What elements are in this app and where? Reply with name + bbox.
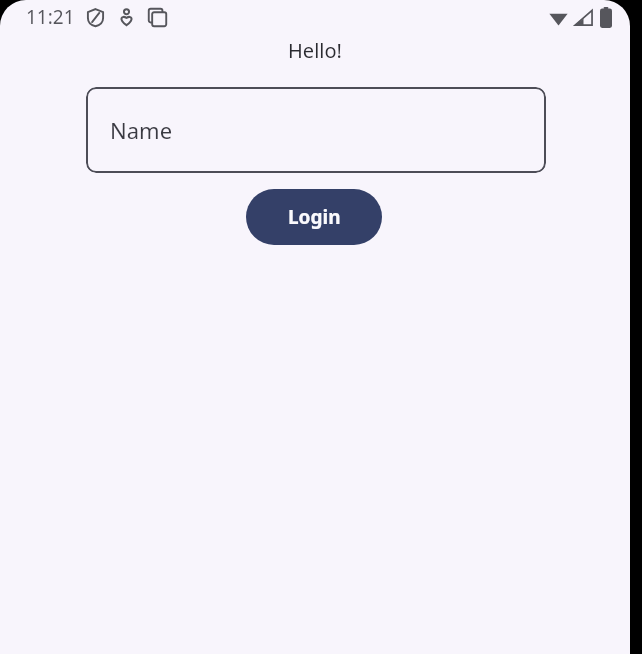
other: Recent apps bbox=[148, 8, 167, 27]
staticText: Hello! bbox=[288, 37, 342, 64]
staticText: 11:21 bbox=[26, 4, 75, 30]
other: Mobile signal bbox=[574, 8, 593, 27]
button[interactable]: Name bbox=[86, 87, 546, 173]
other: Health bbox=[118, 9, 135, 26]
staticText: Name bbox=[110, 115, 173, 145]
staticText: Login bbox=[288, 204, 341, 230]
other: Privacy shield bbox=[86, 8, 105, 27]
other: Battery bbox=[600, 7, 612, 28]
other: Wi-Fi bbox=[549, 8, 568, 27]
button[interactable]: Login bbox=[246, 189, 382, 245]
